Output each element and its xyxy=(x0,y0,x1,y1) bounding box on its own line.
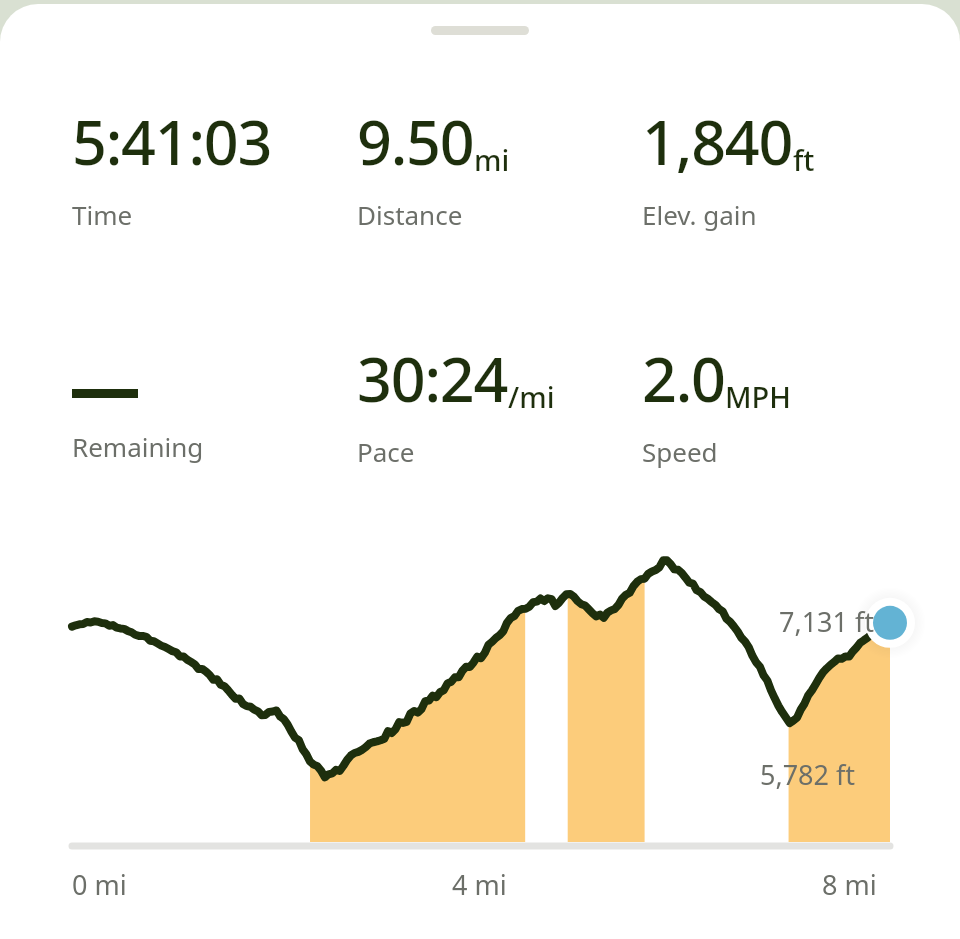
button[interactable]: 5:41:03 xyxy=(72,100,357,232)
staticText: Remaining xyxy=(72,429,204,464)
button[interactable]: 1,840 xyxy=(642,100,815,232)
staticText: mi xyxy=(474,140,510,179)
button[interactable]: 7,131 ft xyxy=(0,4,960,939)
button[interactable]: 9.50 xyxy=(357,100,642,232)
staticText: Time xyxy=(72,197,133,232)
staticText: 0 mi xyxy=(72,866,127,903)
button[interactable]: 30:24 xyxy=(357,337,642,469)
staticText: Distance xyxy=(357,197,463,232)
button[interactable]: Remaining xyxy=(72,337,357,464)
staticText: ft xyxy=(793,140,815,179)
staticText: /mi xyxy=(508,377,555,416)
staticText: 4 mi xyxy=(452,866,507,903)
staticText: MPH xyxy=(725,377,792,416)
button[interactable]: 2.0 xyxy=(642,337,792,469)
staticText: 7,131 ft xyxy=(779,603,875,640)
staticText: 1,840 xyxy=(642,100,793,183)
staticText: 8 mi xyxy=(822,866,877,903)
staticText: Speed xyxy=(642,434,718,469)
staticText: 30:24 xyxy=(357,337,508,420)
staticText: 2.0 xyxy=(642,337,725,420)
staticText: Elev. gain xyxy=(642,197,757,232)
staticText: 5:41:03 xyxy=(72,100,272,183)
staticText: Pace xyxy=(357,434,415,469)
button[interactable]: Drag handle xyxy=(431,26,529,35)
staticText: 9.50 xyxy=(357,100,474,183)
staticText: 5,782 ft xyxy=(760,756,856,793)
